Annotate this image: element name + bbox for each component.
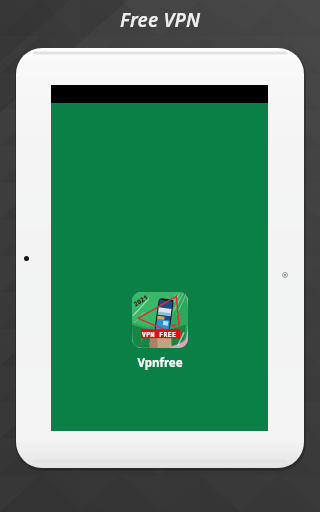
staticText: Vpnfree (137, 355, 183, 371)
button[interactable]: Vpnfree app icon (123, 292, 197, 371)
other: Sensor (282, 272, 288, 278)
staticText: 2021 (132, 292, 150, 308)
other: Front camera (24, 256, 29, 261)
staticText: VPN FREE (142, 330, 177, 339)
staticText: Free VPN (120, 7, 201, 33)
other: Vpnfree app icon (132, 292, 188, 348)
